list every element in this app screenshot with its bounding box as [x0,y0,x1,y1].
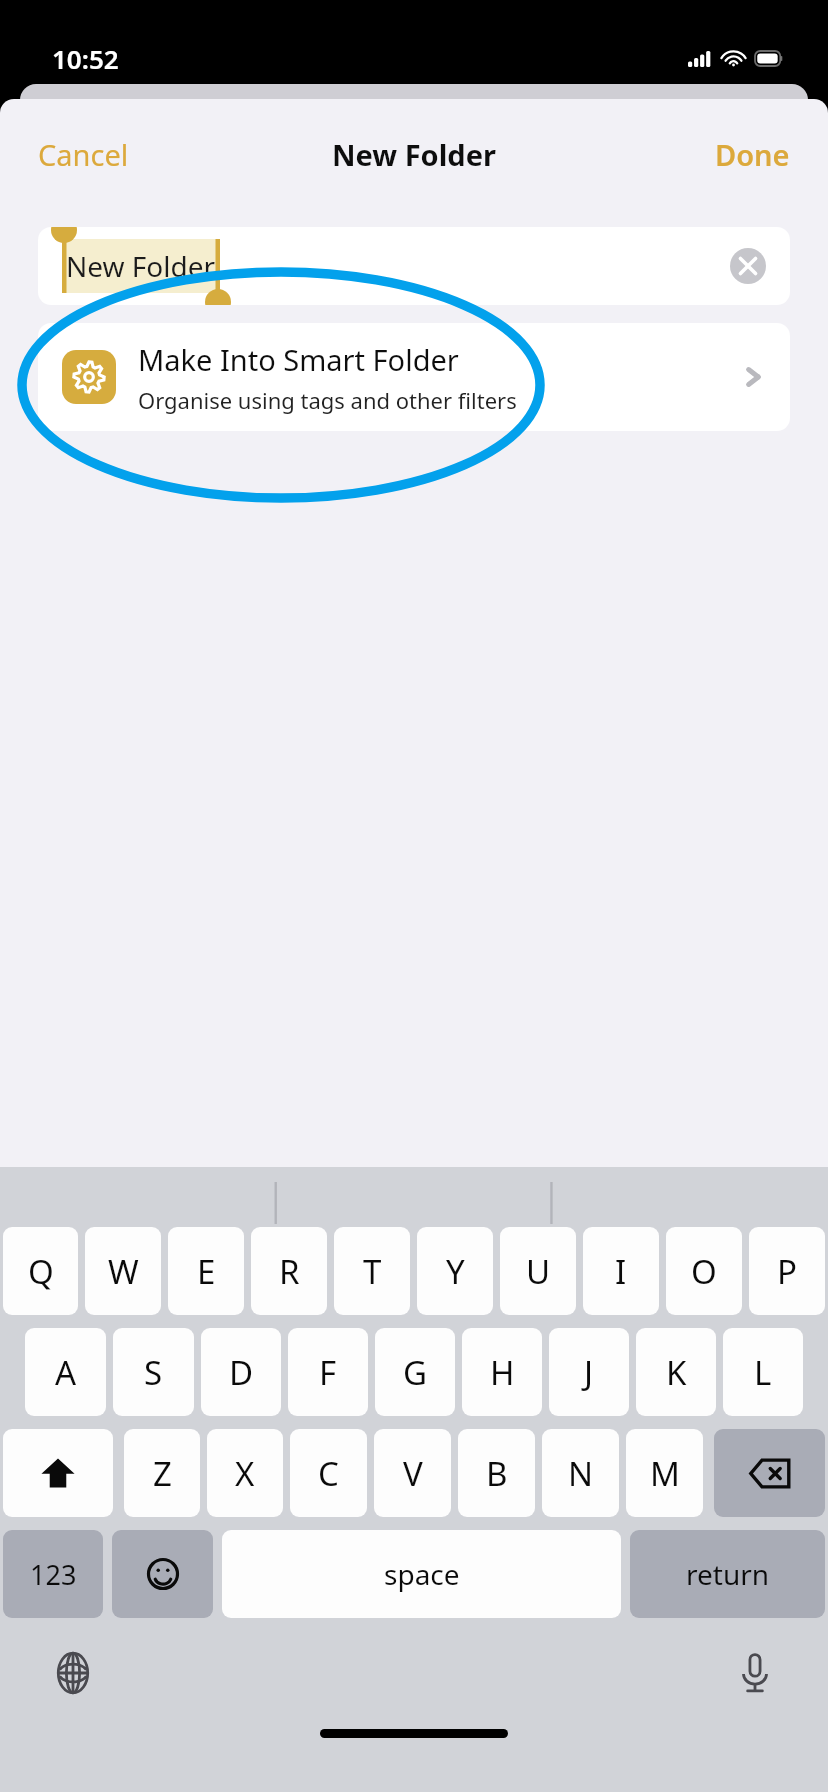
button[interactable]: M [626,1429,703,1517]
staticText: Z [153,1451,172,1496]
button[interactable]: Y [417,1227,493,1315]
staticText: Q [28,1249,54,1294]
button[interactable]: R [251,1227,327,1315]
staticText: Make Into Smart Folder [138,340,459,379]
button[interactable]: 123 [3,1530,103,1618]
button[interactable]: L [723,1328,803,1416]
staticText: space [384,1555,460,1593]
button[interactable]: K [636,1328,716,1416]
button[interactable]: Clear text [730,248,766,284]
staticText: G [403,1350,428,1395]
button[interactable]: Q [3,1227,78,1315]
staticText: J [584,1350,594,1395]
button[interactable]: W [85,1227,161,1315]
staticText: F [319,1350,337,1395]
button[interactable]: Make Into Smart Folder [38,323,790,431]
button[interactable]: Change keyboard language [46,1646,100,1700]
button[interactable]: V [374,1429,451,1517]
button[interactable]: Shift [3,1429,113,1517]
button[interactable]: return [630,1530,825,1618]
staticText: O [691,1249,717,1294]
button[interactable]: N [542,1429,619,1517]
button[interactable]: G [375,1328,455,1416]
button[interactable]: T [334,1227,410,1315]
staticText: K [666,1350,687,1395]
staticText: 123 [30,1556,77,1593]
staticText: 10:52 [52,41,119,76]
staticText: return [686,1555,770,1593]
staticText: V [403,1451,423,1496]
button[interactable]: Emoji keyboard [112,1530,213,1618]
staticText: L [754,1350,772,1395]
staticText: I [615,1249,627,1294]
button[interactable]: C [290,1429,367,1517]
staticText: X [235,1451,255,1496]
button[interactable]: space [222,1530,621,1618]
button[interactable]: F [288,1328,368,1416]
staticText: New Folder [66,247,216,285]
button[interactable]: S [113,1328,194,1416]
staticText: B [486,1451,508,1496]
staticText: C [318,1451,339,1496]
staticText: A [55,1350,77,1395]
staticText: M [650,1451,680,1496]
button[interactable]: Done [677,121,828,188]
button[interactable]: J [549,1328,629,1416]
staticText: Organise using tags and other filters [138,385,517,415]
button[interactable]: D [201,1328,281,1416]
staticText: H [490,1350,515,1395]
staticText: S [144,1350,163,1395]
button[interactable]: B [458,1429,535,1517]
staticText: Done [715,135,790,174]
button[interactable]: P [749,1227,825,1315]
button[interactable]: New Folder [38,227,790,305]
staticText: N [568,1451,594,1496]
staticText: New Folder [332,135,496,174]
staticText: R [279,1249,300,1294]
button[interactable]: U [500,1227,576,1315]
staticText: Y [446,1249,465,1294]
button[interactable]: Dictate [728,1646,782,1700]
staticText: W [108,1249,139,1294]
button[interactable]: H [462,1328,542,1416]
button[interactable]: Backspace [714,1429,825,1517]
staticText: D [229,1350,254,1395]
button[interactable]: Z [124,1429,200,1517]
staticText: U [526,1249,551,1294]
other: Open smart folder options [742,366,764,388]
staticText: T [363,1249,382,1294]
button[interactable]: A [25,1328,106,1416]
button[interactable]: I [583,1227,659,1315]
button[interactable]: X [207,1429,283,1517]
button[interactable]: Cancel [0,121,167,188]
staticText: E [197,1249,216,1294]
staticText: P [777,1249,797,1294]
staticText: Cancel [38,135,129,174]
button[interactable]: O [666,1227,742,1315]
button[interactable]: E [168,1227,244,1315]
